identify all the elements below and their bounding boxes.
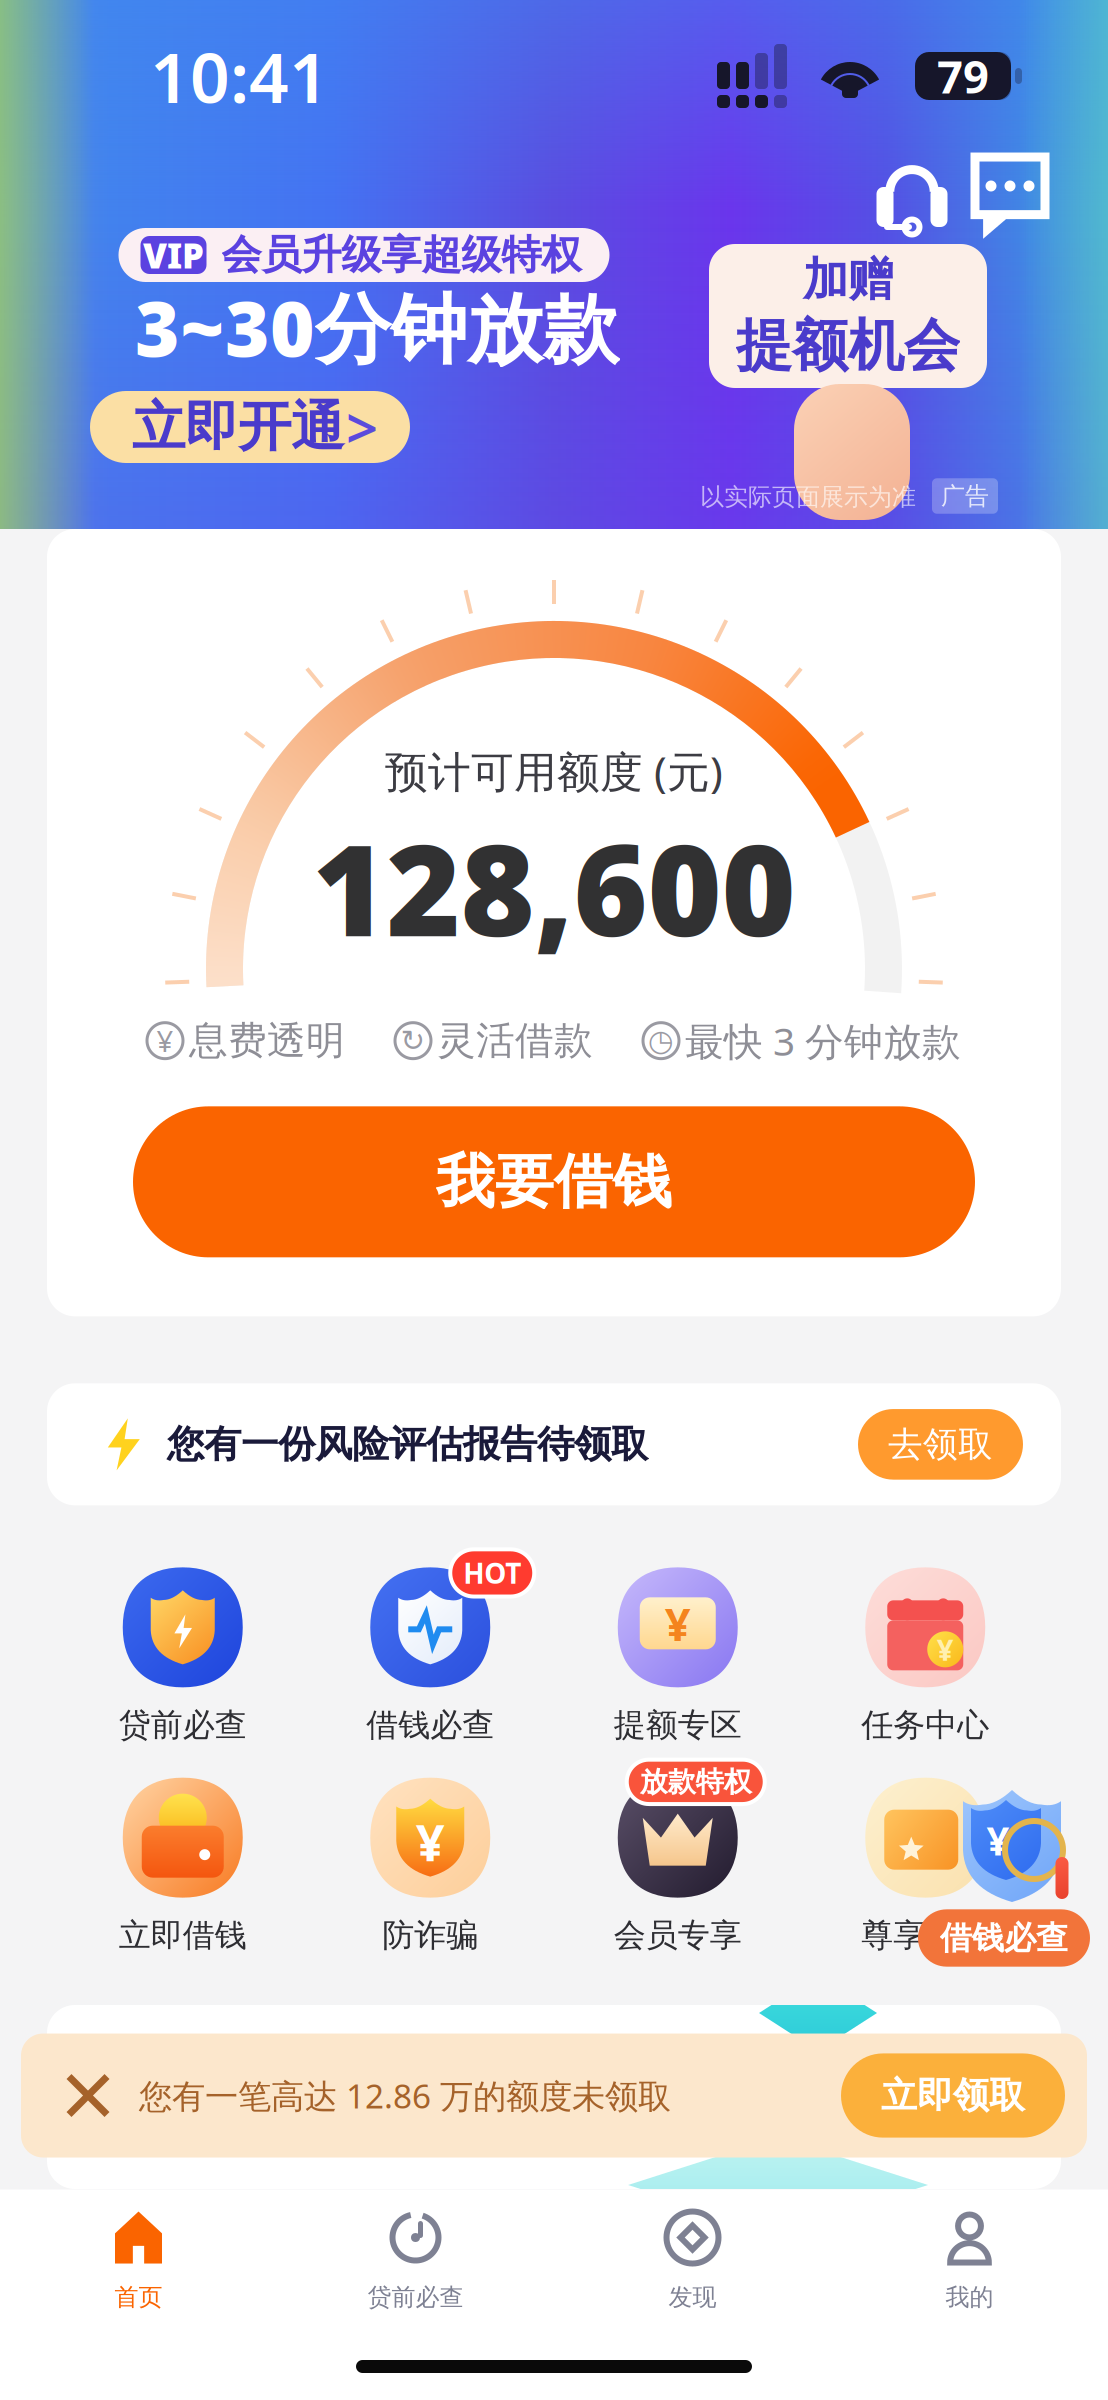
staticText: 广告 bbox=[941, 481, 989, 511]
staticText: ¥ bbox=[986, 1813, 1009, 1866]
staticText: 发现 bbox=[668, 2282, 716, 2312]
button[interactable]: 首页 bbox=[0, 2211, 277, 2312]
staticText: 79 bbox=[937, 46, 989, 106]
staticText: 立即领取 bbox=[881, 2073, 1025, 2118]
button[interactable]: ¥ bbox=[801, 1567, 1049, 1745]
staticText: 防诈骗 bbox=[382, 1916, 478, 1955]
staticText: 最快 3 分钟放款 bbox=[685, 1015, 961, 1066]
staticText: 我的 bbox=[945, 2282, 993, 2312]
staticText: 10:41 bbox=[150, 30, 329, 122]
button[interactable]: 消息 bbox=[962, 145, 1058, 241]
staticText: ¥ bbox=[665, 1593, 691, 1653]
staticText: ◷ bbox=[648, 1024, 674, 1057]
staticText: 任务中心 bbox=[861, 1705, 989, 1745]
staticText: HOT bbox=[463, 1554, 521, 1591]
button[interactable]: 关闭 bbox=[57, 2064, 119, 2126]
button[interactable]: 我要借钱 bbox=[133, 1106, 975, 1257]
staticText: 灵活借款 bbox=[437, 1017, 593, 1064]
button[interactable]: 贷前必查 bbox=[59, 1567, 306, 1745]
staticText: 息费透明 bbox=[189, 1017, 345, 1064]
staticText: 我要借钱 bbox=[436, 1146, 672, 1218]
button[interactable]: 尊享权益 bbox=[801, 1778, 1049, 1955]
button[interactable]: HOT bbox=[306, 1567, 554, 1745]
staticText: 放款特权 bbox=[640, 1765, 752, 1799]
button[interactable]: 放款特权 bbox=[554, 1778, 801, 1955]
staticText: 您有一份风险评估报告待领取 bbox=[167, 1421, 648, 1467]
staticText: ↻ bbox=[400, 1024, 425, 1057]
button[interactable]: 发现 bbox=[554, 2211, 831, 2312]
staticText: ¥ bbox=[937, 1630, 954, 1669]
staticText: 会员升级享超级特权 bbox=[221, 230, 581, 279]
staticText: 贷前必查 bbox=[367, 2282, 463, 2312]
staticText: 加赠 bbox=[803, 252, 893, 307]
staticText: 您有一笔高达 12.86 万的额度未领取 bbox=[139, 2073, 671, 2118]
button[interactable]: 贷前必查 bbox=[277, 2211, 554, 2312]
staticText: 去领取 bbox=[888, 1423, 993, 1466]
staticText: > bbox=[346, 390, 378, 464]
staticText: 立即借钱 bbox=[119, 1916, 247, 1955]
staticText: 提额机会 bbox=[736, 311, 960, 380]
staticText: VIP bbox=[143, 232, 204, 278]
button[interactable]: 去领取 bbox=[858, 1409, 1023, 1480]
button[interactable]: 我的 bbox=[831, 2211, 1108, 2312]
staticText: 借钱必查 bbox=[366, 1705, 494, 1745]
staticText: 首页 bbox=[114, 2282, 162, 2312]
staticText: 借钱必查 bbox=[940, 1918, 1068, 1958]
staticText: 尊享权益 bbox=[861, 1916, 989, 1955]
staticText: 提额专区 bbox=[614, 1705, 742, 1745]
staticText: 立即开通 bbox=[132, 394, 344, 460]
button[interactable]: ¥ bbox=[306, 1778, 554, 1955]
button[interactable]: ¥ bbox=[554, 1567, 801, 1745]
button[interactable]: 立即借钱 bbox=[59, 1778, 306, 1955]
staticText: 以实际页面展示为准 bbox=[700, 482, 916, 512]
staticText: 预计可用额度 (元) bbox=[385, 743, 723, 799]
staticText: 会员专享 bbox=[614, 1916, 742, 1955]
staticText: 3~30分钟放款 bbox=[135, 276, 619, 377]
button[interactable]: 立即领取 bbox=[841, 2053, 1065, 2138]
staticText: ¥ bbox=[416, 1808, 445, 1875]
staticText: ¥ bbox=[156, 1021, 173, 1060]
staticText: 贷前必查 bbox=[119, 1705, 247, 1745]
staticText: 128,600 bbox=[312, 803, 795, 971]
button[interactable]: 客服 bbox=[864, 145, 960, 241]
button[interactable]: 立即开通 bbox=[90, 391, 410, 463]
